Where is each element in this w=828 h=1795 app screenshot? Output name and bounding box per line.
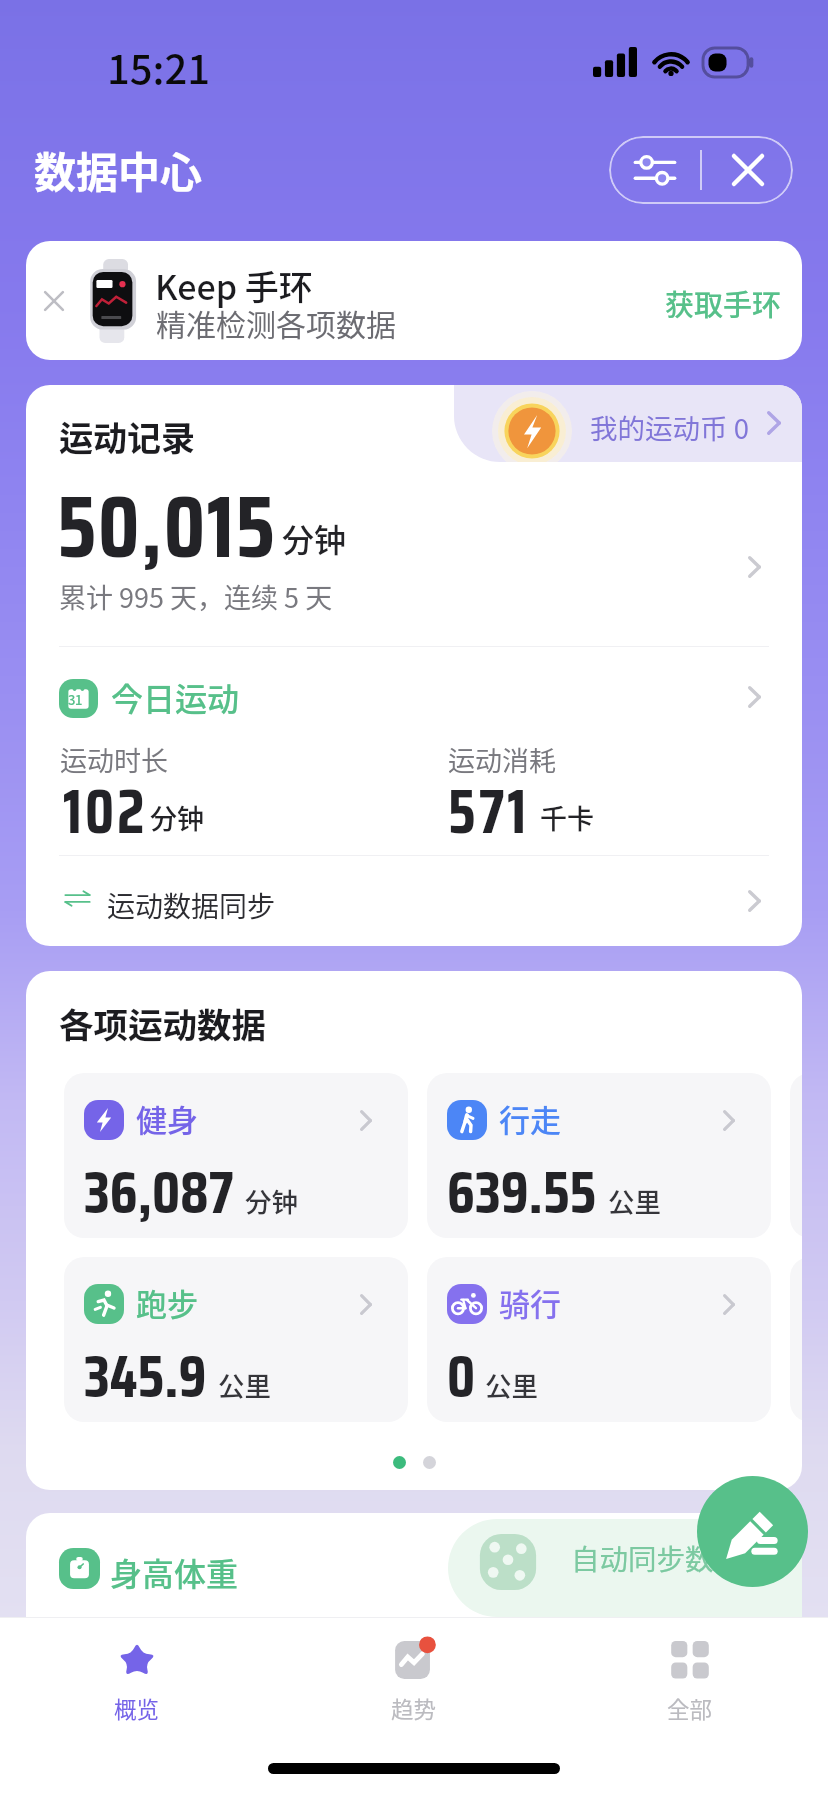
staticText: Keep 手环 [155, 261, 313, 310]
staticText: 千卡 [540, 798, 594, 837]
button[interactable]: 行走 [427, 1073, 771, 1238]
staticText: 获取手环 [665, 282, 782, 324]
staticText: 全部 [667, 1692, 713, 1725]
staticText: 分钟 [245, 1181, 298, 1219]
staticText: 数据中心 [34, 139, 203, 200]
button[interactable]: 我的运动币 0 [454, 385, 802, 462]
staticText: 趋势 [391, 1692, 437, 1725]
staticText: 累计 995 天，连续 5 天 [59, 577, 333, 616]
button[interactable]: 运动数据同步 [26, 855, 802, 946]
button[interactable]: 自动同步数据 [26, 1513, 802, 1617]
button[interactable]: Dismiss [28, 275, 80, 327]
button[interactable]: 趋势 [344, 1619, 484, 1743]
staticText: 精准检测各项数据 [156, 301, 396, 344]
staticText: 骑行 [499, 1280, 561, 1325]
button[interactable]: Close [702, 136, 793, 204]
staticText: 运动时长 [60, 740, 168, 779]
button[interactable]: Add record [697, 1476, 808, 1587]
button[interactable]: 健身 [64, 1073, 408, 1238]
staticText: 行走 [499, 1096, 561, 1141]
staticText: 运动消耗 [448, 740, 556, 779]
staticText: 各项运动数据 [59, 998, 266, 1048]
staticText: 概览 [114, 1692, 160, 1725]
staticText: 15:21 [107, 38, 211, 96]
staticText: 0 [447, 1330, 476, 1422]
staticText: 公里 [485, 1365, 538, 1403]
staticText: 36,087 [84, 1146, 234, 1238]
staticText: 公里 [608, 1181, 661, 1219]
button[interactable]: 骑行 [427, 1257, 771, 1422]
staticText: 31 [68, 690, 83, 709]
staticText: 今日运动 [111, 674, 240, 720]
staticText: 自动同步数据 [571, 1537, 743, 1578]
button[interactable]: 全部 [620, 1619, 760, 1743]
staticText: 运动记录 [59, 412, 195, 461]
staticText: 345.9 [84, 1330, 207, 1422]
staticText: 639.55 [447, 1146, 597, 1238]
staticText: 50,015 [57, 458, 277, 595]
button[interactable]: 跑步 [64, 1257, 408, 1422]
staticText: 运动数据同步 [107, 885, 276, 926]
staticText: 跑步 [136, 1280, 198, 1325]
staticText: 571 [448, 764, 530, 860]
staticText: 我的运动币 0 [590, 407, 749, 447]
staticText: 分钟 [150, 798, 204, 837]
button[interactable]: 运动记录 [26, 385, 802, 646]
staticText: 身高体重 [110, 1549, 239, 1595]
button[interactable]: 概览 [67, 1619, 207, 1743]
button[interactable]: Dismiss [26, 241, 802, 360]
staticText: 102 [63, 764, 148, 860]
button[interactable]: Settings [609, 136, 700, 204]
staticText: 公里 [218, 1365, 271, 1403]
staticText: 分钟 [282, 515, 347, 561]
staticText: 健身 [136, 1096, 198, 1141]
button[interactable]: 31 [26, 646, 802, 855]
